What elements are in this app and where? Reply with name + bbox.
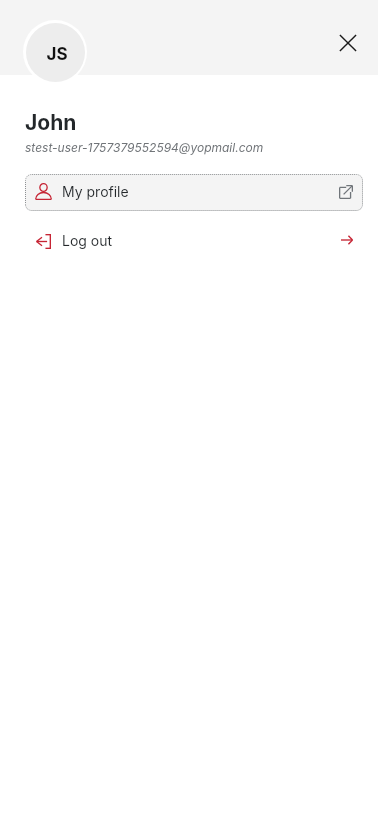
- staticText: My profile: [62, 183, 129, 200]
- button[interactable]: Log out: [25, 222, 363, 259]
- staticText: Log out: [62, 232, 113, 249]
- staticText: JS: [46, 44, 68, 65]
- button[interactable]: Close: [328, 23, 368, 63]
- staticText: stest-user-1757379552594@yopmail.com: [25, 140, 264, 155]
- button[interactable]: My profile: [25, 174, 363, 211]
- staticText: John: [25, 110, 77, 135]
